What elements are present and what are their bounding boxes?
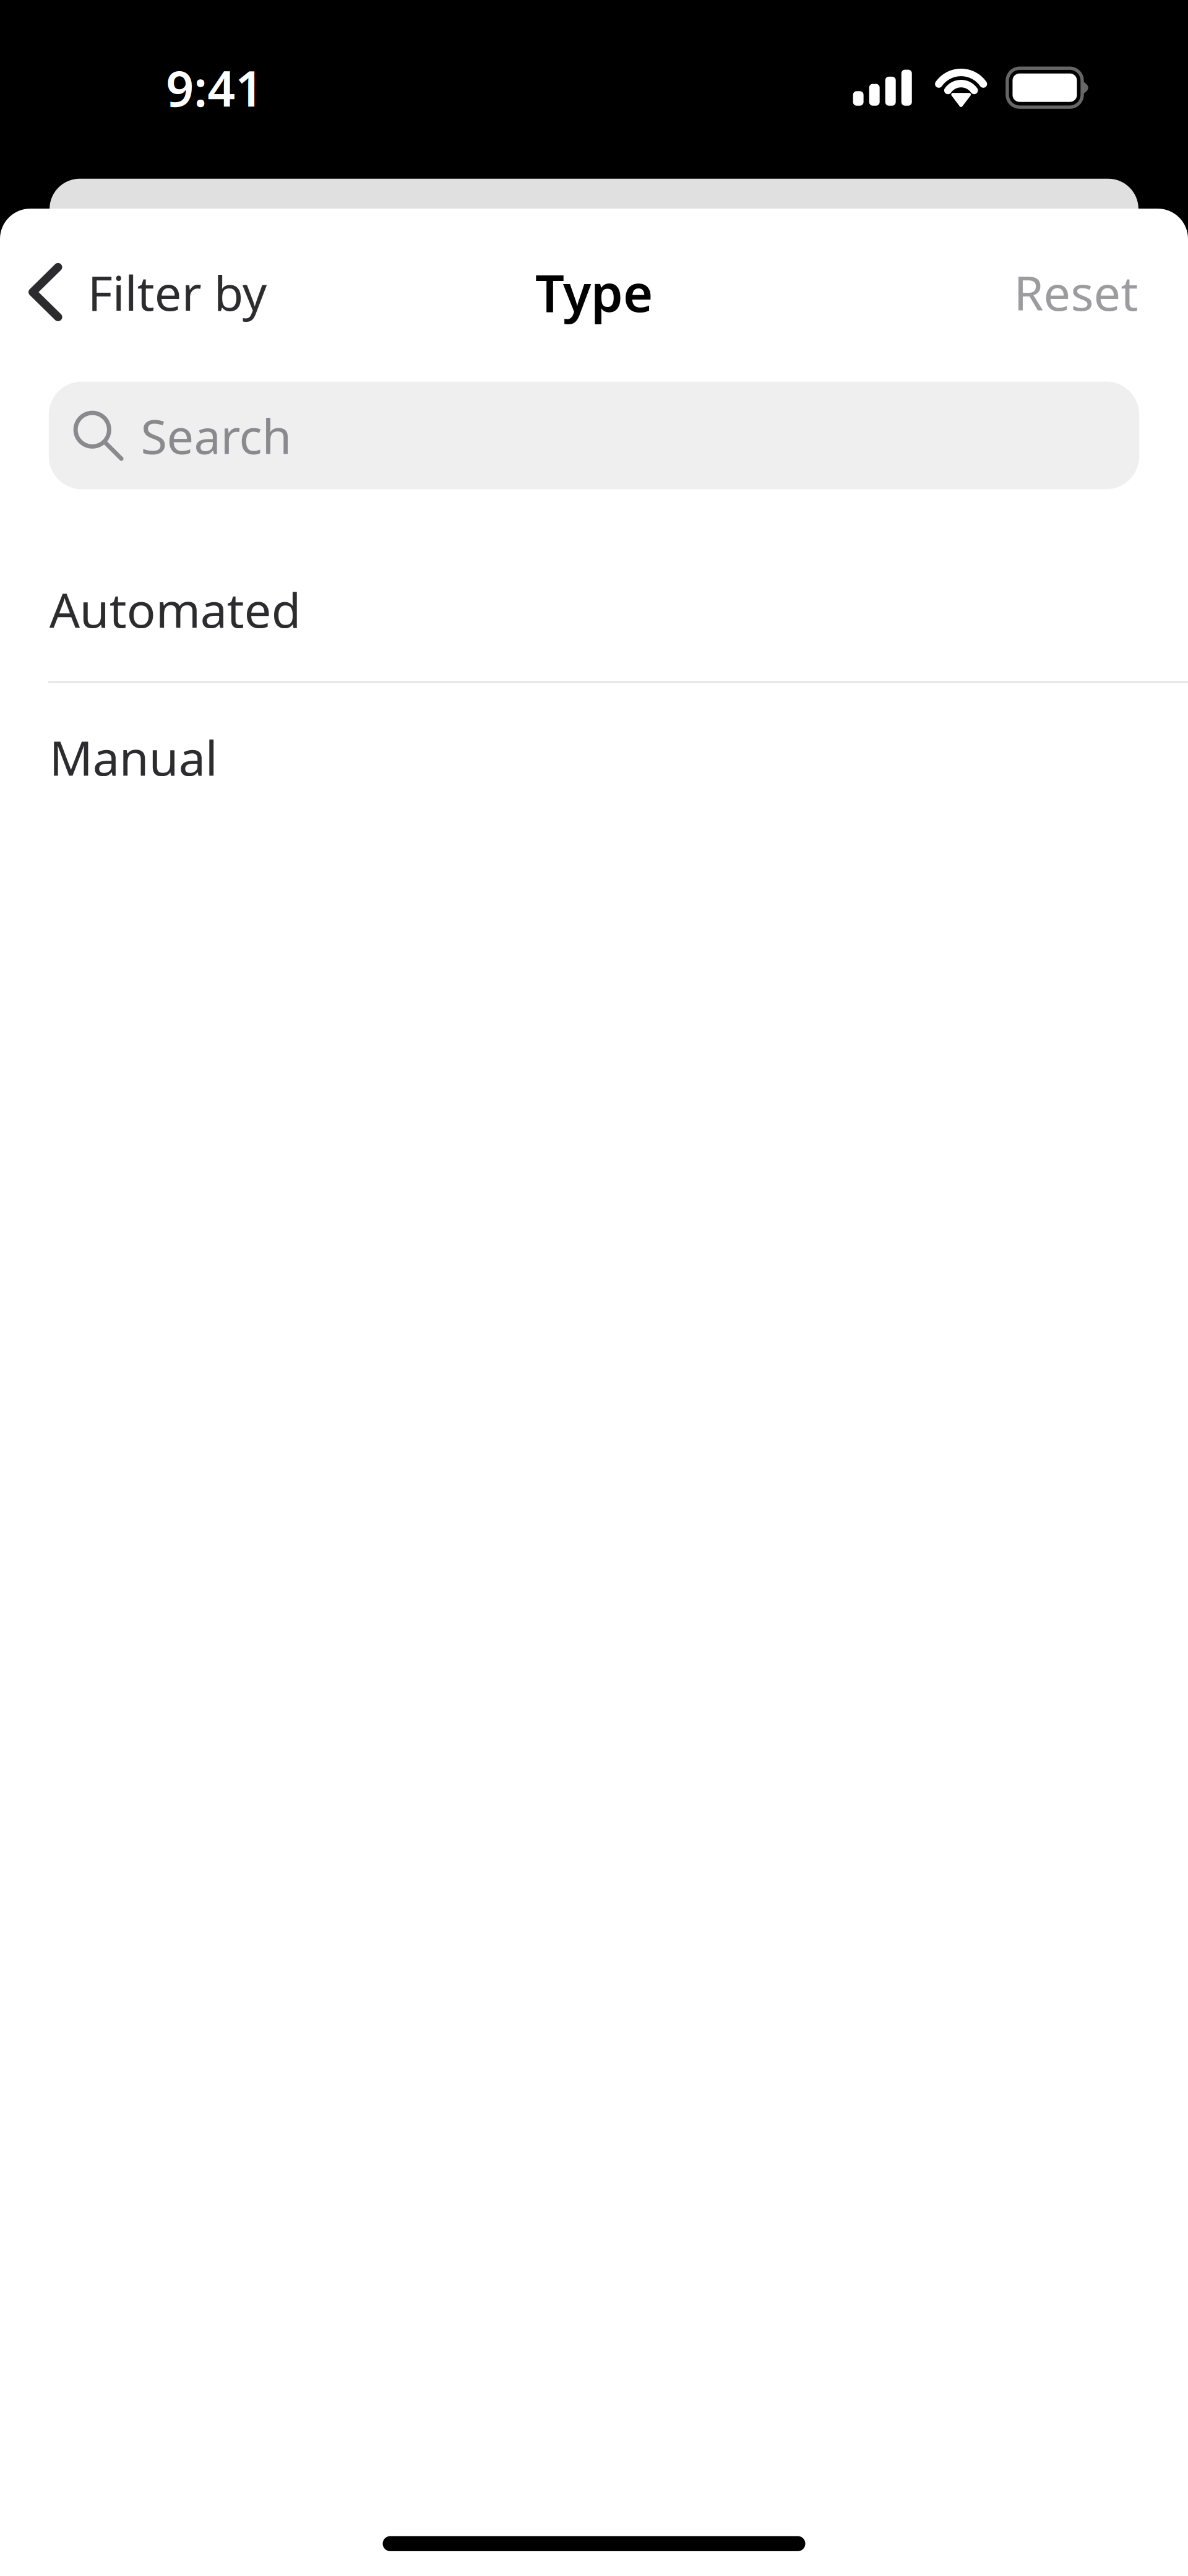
button[interactable]: Automated xyxy=(0,537,1188,683)
staticText: Filter by xyxy=(88,260,266,324)
staticText: Type xyxy=(535,258,653,326)
button[interactable]: Back to Filter by xyxy=(0,226,297,359)
staticText: Automated xyxy=(49,577,301,641)
staticText: Search xyxy=(141,404,292,467)
staticText: Manual xyxy=(49,725,218,789)
button[interactable]: Reset xyxy=(964,226,1188,359)
button[interactable]: Search xyxy=(49,382,1139,489)
staticText: 9:41 xyxy=(166,55,263,120)
button[interactable]: Manual xyxy=(0,683,1188,831)
staticText: Reset xyxy=(1014,260,1138,324)
